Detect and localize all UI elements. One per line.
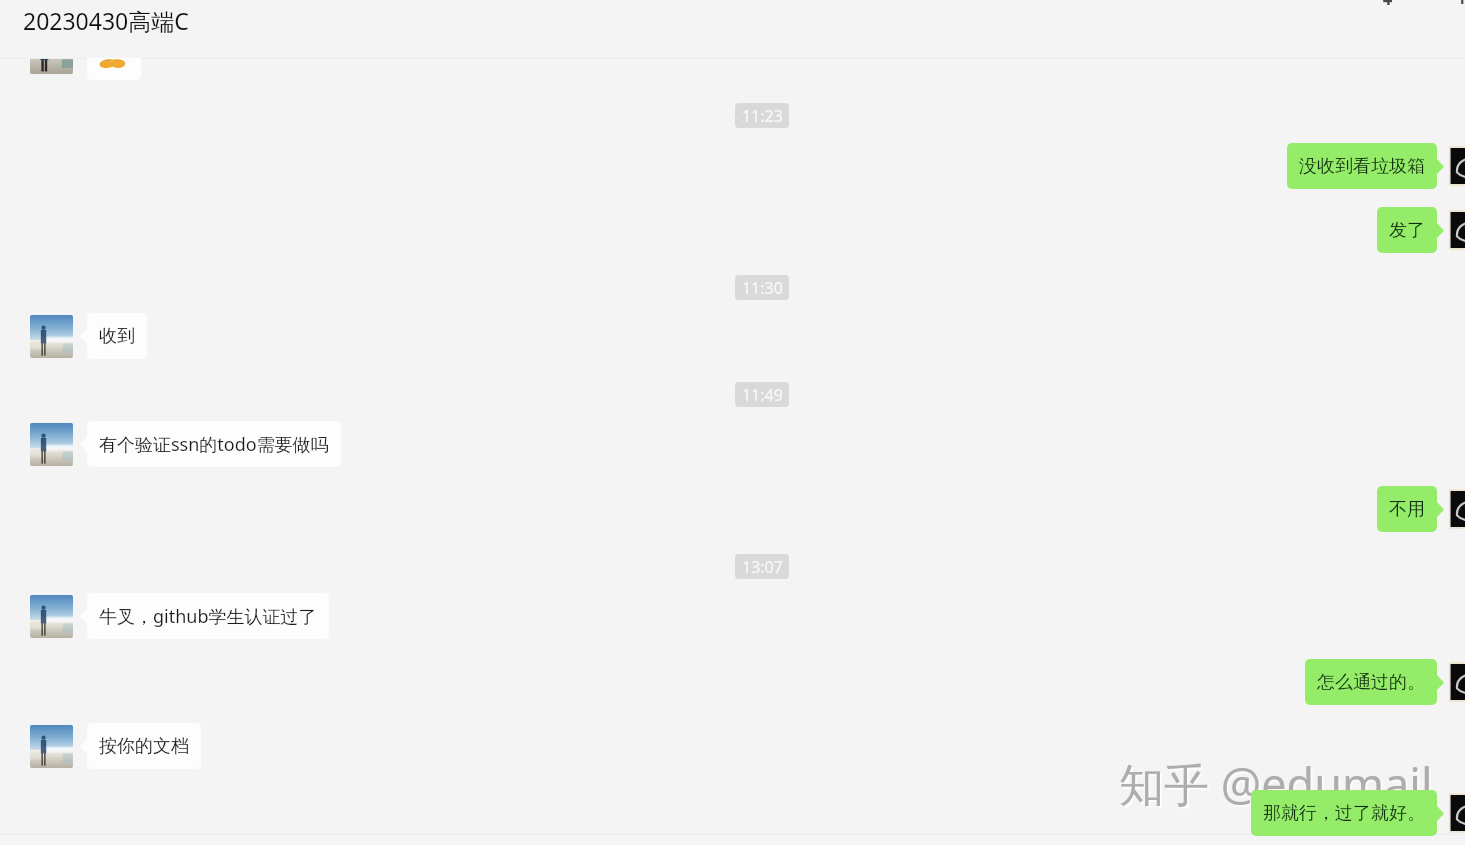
- staticText: 没收到看垃圾箱: [1299, 155, 1425, 178]
- button[interactable]: 不用: [1377, 486, 1437, 532]
- button[interactable]: Contact avatar: [30, 423, 73, 466]
- staticText: 不用: [1389, 498, 1425, 521]
- button[interactable]: 收到: [87, 313, 147, 359]
- button[interactable]: 11:30: [735, 275, 789, 300]
- staticText: 有个验证ssn的todo需要做吗: [99, 432, 329, 457]
- button[interactable]: My avatar: [1449, 210, 1465, 250]
- button[interactable]: 有个验证ssn的todo需要做吗: [87, 421, 341, 467]
- staticText: 发了: [1389, 219, 1425, 242]
- staticText: 收到: [99, 325, 135, 348]
- button[interactable]: 那就行，过了就好。: [1251, 790, 1437, 836]
- button[interactable]: Add: [1380, 0, 1396, 5]
- button[interactable]: [87, 58, 141, 80]
- button[interactable]: My avatar: [1449, 793, 1465, 833]
- staticText: 11:23: [742, 105, 783, 127]
- button[interactable]: 13:07: [735, 554, 789, 579]
- button[interactable]: 按你的文档: [87, 723, 201, 769]
- button[interactable]: Contact avatar: [30, 725, 73, 768]
- button[interactable]: My avatar: [1449, 146, 1465, 186]
- staticText: 20230430高端C: [23, 5, 189, 36]
- staticText: 11:49: [742, 384, 783, 406]
- staticText: 那就行，过了就好。: [1263, 802, 1425, 825]
- staticText: 牛叉，github学生认证过了: [99, 604, 317, 629]
- button[interactable]: 11:49: [735, 382, 789, 407]
- button[interactable]: 怎么通过的。: [1305, 659, 1437, 705]
- button[interactable]: My avatar: [1449, 489, 1465, 529]
- button[interactable]: 发了: [1377, 207, 1437, 253]
- button[interactable]: 11:23: [735, 103, 789, 128]
- staticText: 知乎 @edumail: [1119, 753, 1433, 814]
- button[interactable]: My avatar: [1449, 662, 1465, 702]
- button[interactable]: 没收到看垃圾箱: [1287, 143, 1437, 189]
- staticText: 知乎 @edumail: [1121, 755, 1435, 816]
- button[interactable]: Contact avatar: [30, 315, 73, 358]
- button[interactable]: Contact avatar: [30, 59, 73, 74]
- staticText: 11:30: [742, 277, 783, 299]
- staticText: 怎么通过的。: [1317, 671, 1425, 694]
- button[interactable]: 牛叉，github学生认证过了: [87, 593, 329, 639]
- button[interactable]: Contact avatar: [30, 595, 73, 638]
- button[interactable]: 20230430高端C: [21, 3, 191, 38]
- staticText: 13:07: [742, 556, 783, 578]
- staticText: 按你的文档: [99, 735, 189, 758]
